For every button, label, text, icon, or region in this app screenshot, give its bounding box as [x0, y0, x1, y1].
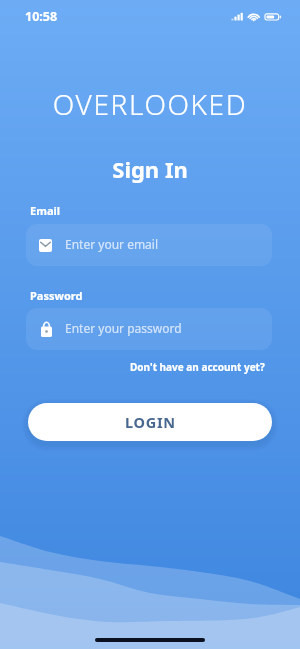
other: Email [39, 239, 52, 252]
other: Password [41, 321, 52, 337]
staticText: Enter your email [65, 236, 159, 252]
staticText: Don't have an account yet? [130, 360, 265, 374]
staticText: 10:58 [25, 8, 58, 25]
staticText: Enter your password [65, 320, 182, 336]
button[interactable]: Email [26, 224, 272, 266]
button[interactable]: Password [26, 308, 272, 350]
button[interactable]: LOGIN [28, 403, 272, 441]
staticText: Password [30, 288, 83, 303]
button[interactable]: Don't have an account yet? [130, 360, 265, 374]
staticText: LOGIN [125, 412, 176, 432]
staticText: Sign In [0, 154, 300, 184]
staticText: Email [30, 203, 61, 218]
staticText: OVERLOOKED [0, 85, 300, 123]
